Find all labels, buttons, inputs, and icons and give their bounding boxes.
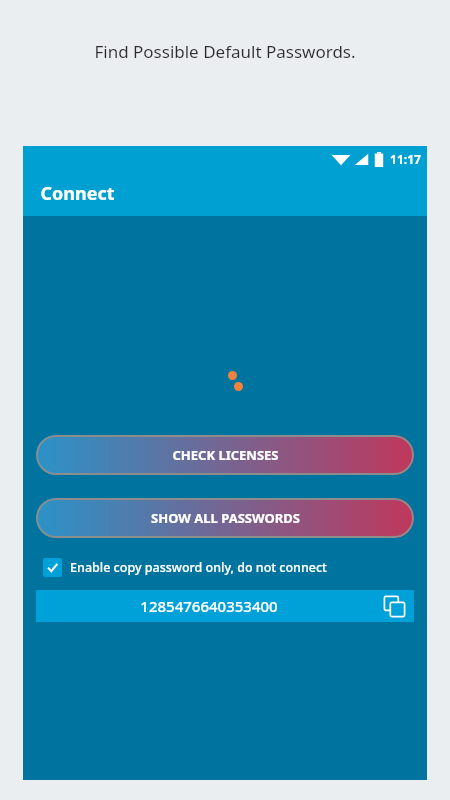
staticText: Connect <box>40 181 115 206</box>
staticText: SHOW ALL PASSWORDS <box>151 509 300 527</box>
button[interactable]: Enable copy password only, do not connec… <box>42 556 328 579</box>
button[interactable]: SHOW ALL PASSWORDS <box>36 498 414 538</box>
staticText: Find Possible Default Passwords. <box>94 40 356 63</box>
button[interactable]: 1285476640353400 <box>36 590 414 622</box>
staticText: CHECK LICENSES <box>172 446 279 464</box>
button[interactable]: CHECK LICENSES <box>36 435 414 475</box>
staticText: 11:17 <box>390 151 421 167</box>
staticText: Enable copy password only, do not connec… <box>70 559 327 576</box>
staticText: 1285476640353400 <box>140 596 278 616</box>
button[interactable]: Copy password <box>381 593 407 619</box>
